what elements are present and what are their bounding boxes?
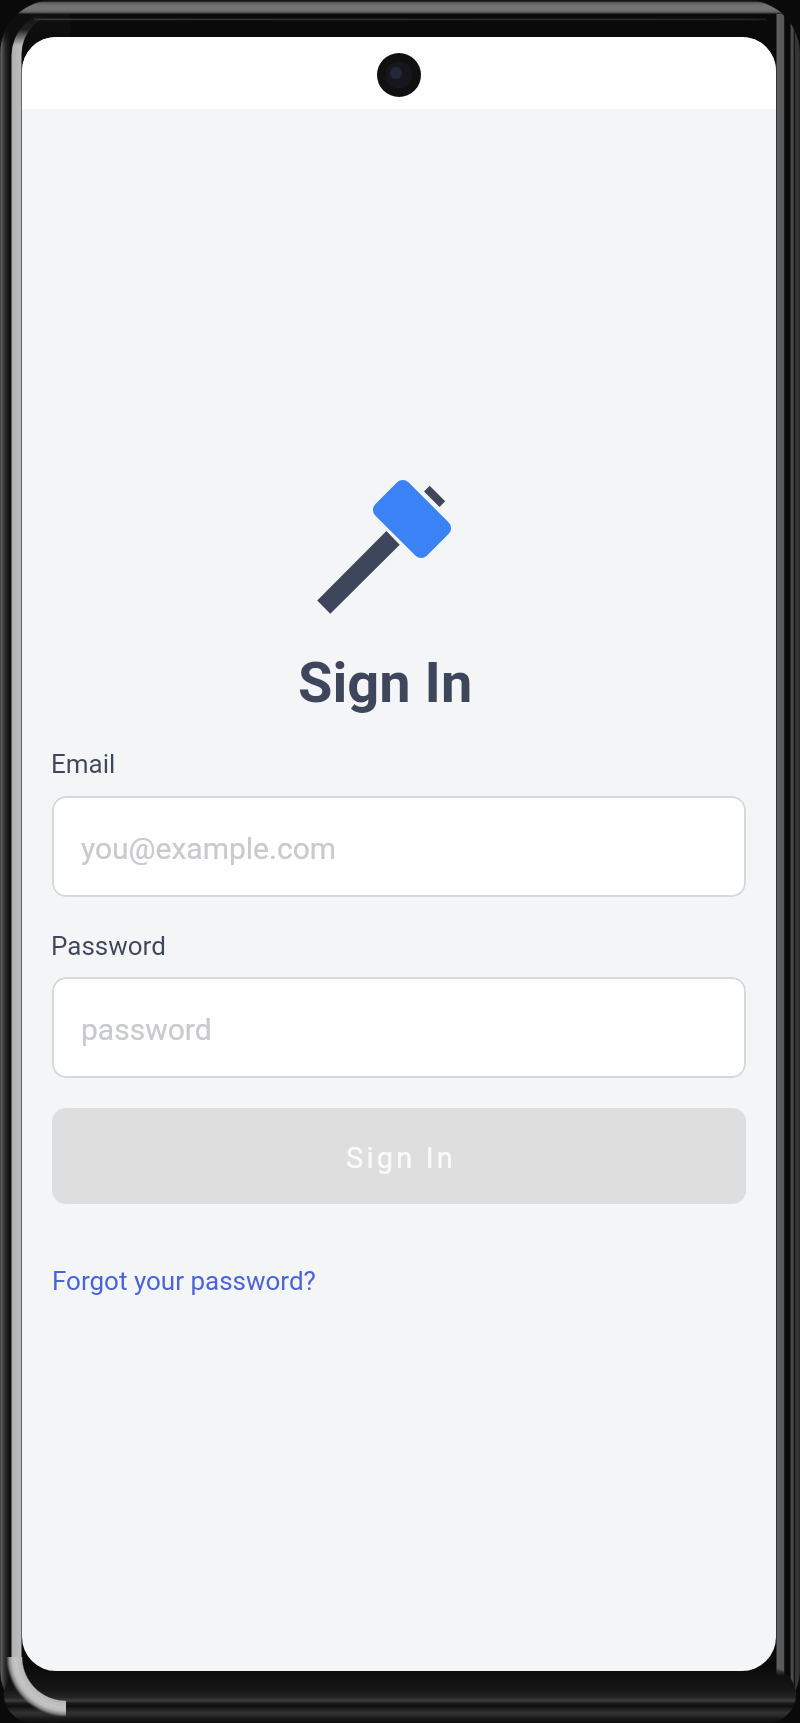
staticText: password [81, 1012, 212, 1047]
button[interactable]: password [52, 977, 746, 1078]
staticText: Sign In [298, 650, 473, 716]
staticText: Forgot your password? [52, 1266, 316, 1296]
staticText: Password [51, 931, 166, 961]
staticText: Email [51, 749, 116, 779]
button[interactable]: Forgot your password? [52, 1266, 332, 1306]
staticText: Sign In [346, 1141, 457, 1175]
button[interactable]: you@example.com [52, 796, 746, 897]
other: App logo [310, 470, 470, 625]
staticText: you@example.com [81, 831, 337, 866]
